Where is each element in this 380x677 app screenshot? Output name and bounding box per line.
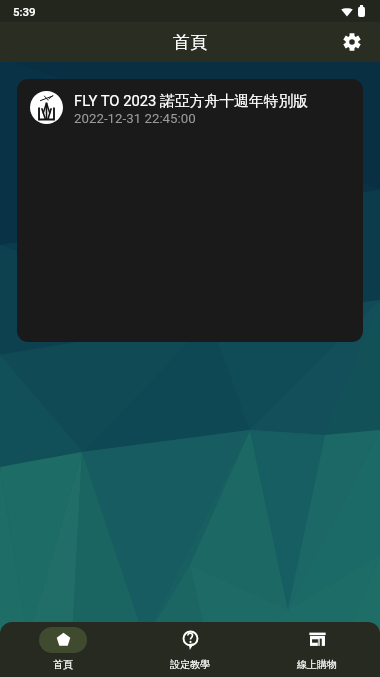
button[interactable]: FLY TO 2023 諾亞方舟十週年特別版 (17, 79, 363, 342)
button[interactable]: 首頁 (0, 622, 126, 677)
button[interactable]: Settings (336, 26, 368, 58)
staticText: FLY TO 2023 諾亞方舟十週年特別版 (74, 92, 309, 111)
button[interactable]: 線上購物 (253, 622, 380, 677)
staticText: 5:39 (13, 5, 36, 18)
button[interactable]: 設定教學 (126, 622, 253, 677)
staticText: 首頁 (53, 658, 73, 671)
staticText: 首頁 (173, 32, 207, 53)
staticText: 2022-12-31 22:45:00 (74, 111, 196, 127)
staticText: 線上購物 (297, 658, 337, 671)
staticText: 設定教學 (170, 658, 210, 671)
